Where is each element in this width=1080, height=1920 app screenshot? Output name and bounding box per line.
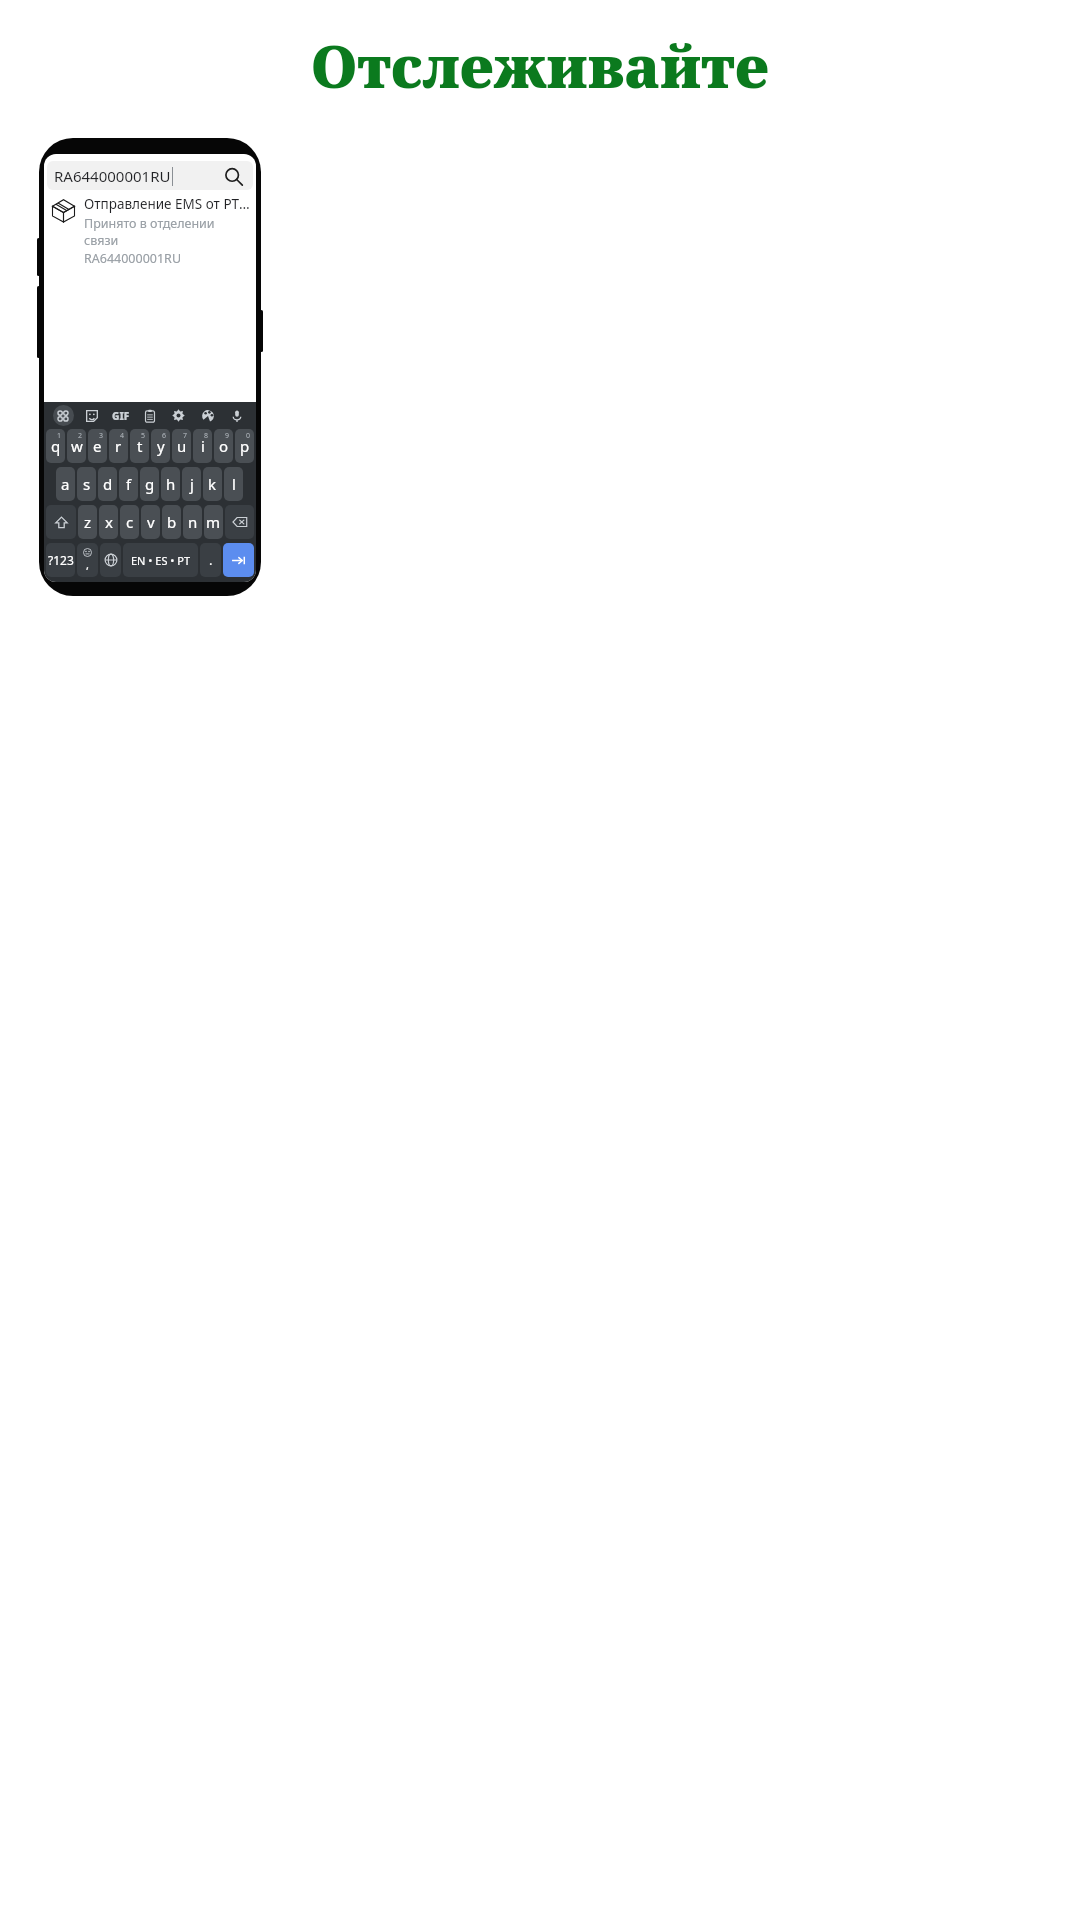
- button[interactable]: c: [120, 505, 139, 539]
- staticText: d: [103, 474, 113, 494]
- button[interactable]: .: [200, 543, 221, 577]
- staticText: 4: [120, 431, 125, 441]
- button[interactable]: Emoji: [77, 543, 98, 577]
- staticText: e: [93, 436, 102, 456]
- staticText: 7: [183, 431, 188, 441]
- button[interactable]: v: [141, 505, 160, 539]
- staticText: 0: [246, 431, 251, 441]
- staticText: 5: [141, 431, 146, 441]
- staticText: o: [219, 436, 229, 456]
- staticText: l: [232, 474, 236, 494]
- button[interactable]: Shift: [46, 505, 76, 539]
- button[interactable]: l: [224, 467, 243, 501]
- button[interactable]: Enter: [223, 543, 254, 577]
- button[interactable]: t: [130, 429, 149, 463]
- button[interactable]: Search: [220, 163, 246, 189]
- button[interactable]: e: [88, 429, 107, 463]
- staticText: g: [145, 474, 155, 494]
- button[interactable]: q: [46, 429, 65, 463]
- button[interactable]: Voice input: [222, 402, 251, 429]
- staticText: k: [208, 474, 217, 494]
- button[interactable]: o: [214, 429, 233, 463]
- button[interactable]: EN • ES • PT: [123, 543, 198, 577]
- staticText: RA644000001RU: [54, 166, 171, 186]
- staticText: x: [105, 512, 113, 532]
- button[interactable]: f: [119, 467, 138, 501]
- button[interactable]: GIF: [106, 402, 135, 429]
- button[interactable]: z: [78, 505, 97, 539]
- staticText: j: [190, 474, 194, 494]
- other: Package: [51, 198, 76, 223]
- staticText: 1: [57, 431, 62, 441]
- button[interactable]: r: [109, 429, 128, 463]
- staticText: .: [209, 551, 213, 569]
- staticText: y: [157, 436, 165, 456]
- button[interactable]: u: [172, 429, 191, 463]
- staticText: s: [83, 474, 91, 494]
- staticText: ,: [86, 557, 89, 572]
- staticText: 3: [99, 431, 104, 441]
- staticText: Отправление EMS от PTM0046-Иван…: [84, 195, 250, 213]
- staticText: EN • ES • PT: [131, 553, 191, 568]
- staticText: t: [137, 436, 143, 456]
- button[interactable]: RA644000001RU: [47, 161, 253, 190]
- button[interactable]: Themes: [193, 402, 222, 429]
- button[interactable]: Apps: [49, 402, 77, 429]
- button[interactable]: Package: [49, 195, 250, 267]
- button[interactable]: ?123: [46, 543, 75, 577]
- button[interactable]: Clipboard: [135, 402, 164, 429]
- staticText: i: [201, 436, 205, 456]
- staticText: c: [126, 512, 134, 532]
- staticText: q: [51, 436, 61, 456]
- staticText: u: [177, 436, 187, 456]
- button[interactable]: g: [140, 467, 159, 501]
- button[interactable]: Settings: [164, 402, 193, 429]
- staticText: 6: [162, 431, 167, 441]
- button[interactable]: d: [98, 467, 117, 501]
- button[interactable]: Change language: [100, 543, 121, 577]
- staticText: p: [240, 436, 250, 456]
- button[interactable]: x: [99, 505, 118, 539]
- button[interactable]: b: [162, 505, 181, 539]
- button[interactable]: s: [77, 467, 96, 501]
- staticText: ?123: [48, 552, 74, 568]
- staticText: h: [166, 474, 176, 494]
- staticText: a: [61, 474, 70, 494]
- staticText: r: [115, 436, 122, 456]
- staticText: f: [126, 474, 132, 494]
- button[interactable]: a: [56, 467, 75, 501]
- staticText: z: [84, 512, 92, 532]
- staticText: RA644000001RU: [84, 250, 182, 267]
- staticText: n: [188, 512, 198, 532]
- staticText: w: [71, 436, 83, 456]
- staticText: Принято в отделении связи: [84, 215, 250, 249]
- button[interactable]: Stickers: [77, 402, 106, 429]
- button[interactable]: p: [235, 429, 254, 463]
- button[interactable]: m: [204, 505, 223, 539]
- staticText: GIF: [112, 409, 130, 423]
- staticText: v: [147, 512, 155, 532]
- button[interactable]: k: [203, 467, 222, 501]
- button[interactable]: j: [182, 467, 201, 501]
- staticText: m: [206, 512, 221, 532]
- staticText: 8: [204, 431, 209, 441]
- button[interactable]: h: [161, 467, 180, 501]
- staticText: b: [167, 512, 177, 532]
- button[interactable]: n: [183, 505, 202, 539]
- staticText: Отслеживайте: [311, 26, 769, 105]
- staticText: 2: [78, 431, 83, 441]
- button[interactable]: w: [67, 429, 86, 463]
- staticText: 9: [225, 431, 230, 441]
- button[interactable]: i: [193, 429, 212, 463]
- button[interactable]: y: [151, 429, 170, 463]
- button[interactable]: Backspace: [225, 505, 254, 539]
